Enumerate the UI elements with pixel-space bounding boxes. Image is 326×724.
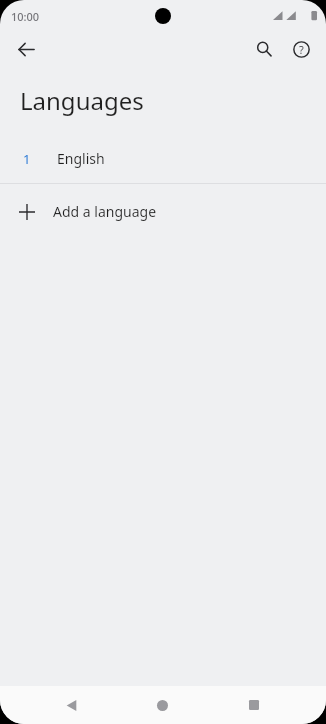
button[interactable]: 1 <box>0 134 326 183</box>
staticText: ? <box>299 42 304 57</box>
button[interactable]: Help <box>284 32 318 66</box>
button[interactable]: Home <box>142 686 182 724</box>
button[interactable]: Recent apps <box>234 686 274 724</box>
staticText: English <box>57 149 105 168</box>
staticText: 1 <box>23 150 31 168</box>
staticText: 10:00 <box>11 9 40 24</box>
button[interactable]: Search <box>247 32 281 66</box>
staticText: Add a language <box>53 202 157 221</box>
button[interactable]: Back <box>51 686 91 724</box>
staticText: Languages <box>20 84 144 117</box>
button[interactable]: Back <box>10 33 42 65</box>
button[interactable]: Add a language <box>0 184 326 239</box>
